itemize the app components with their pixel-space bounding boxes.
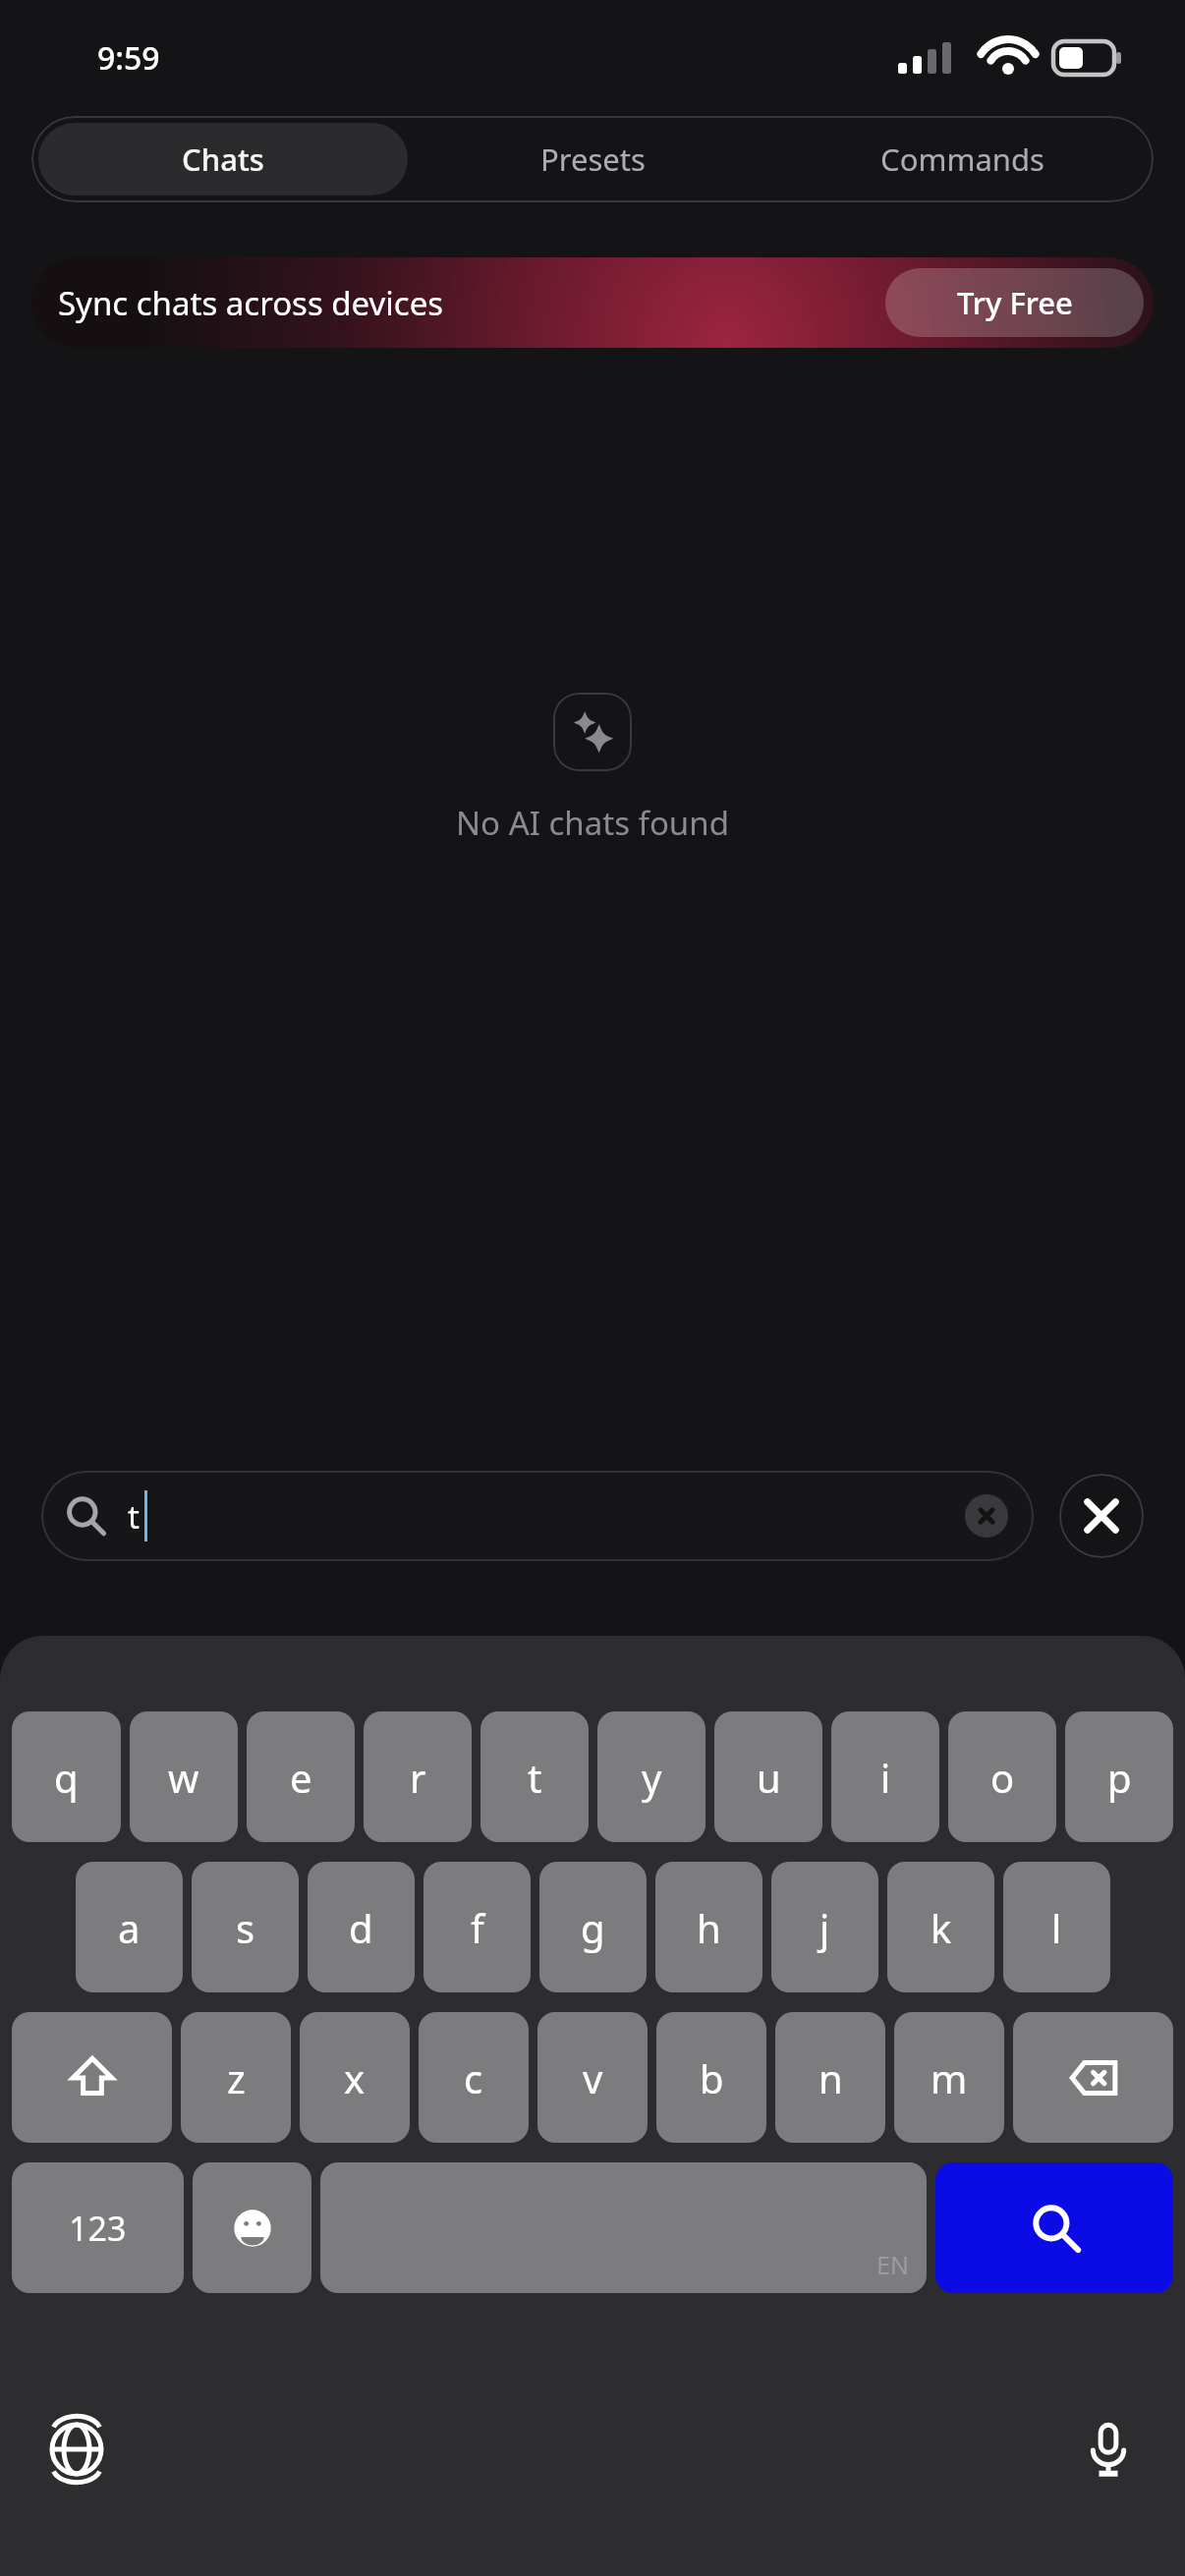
- button[interactable]: s: [192, 1862, 299, 1992]
- staticText: t: [528, 1751, 542, 1804]
- button[interactable]: x: [300, 2012, 410, 2143]
- button[interactable]: Chats: [38, 123, 408, 196]
- staticText: w: [168, 1751, 199, 1804]
- staticText: Chats: [182, 139, 264, 180]
- button[interactable]: u: [714, 1711, 822, 1842]
- button[interactable]: t: [480, 1711, 589, 1842]
- button[interactable]: p: [1065, 1711, 1173, 1842]
- staticText: u: [757, 1751, 781, 1804]
- button[interactable]: f: [423, 1862, 531, 1992]
- button[interactable]: Try Free: [885, 268, 1144, 337]
- button[interactable]: l: [1003, 1862, 1110, 1992]
- button[interactable]: Emoji: [193, 2162, 311, 2293]
- staticText: Sync chats across devices: [58, 281, 444, 325]
- button[interactable]: 123: [12, 2162, 184, 2293]
- staticText: r: [410, 1751, 426, 1804]
- staticText: p: [1107, 1751, 1132, 1804]
- staticText: EN: [876, 2248, 909, 2281]
- button[interactable]: b: [656, 2012, 766, 2143]
- staticText: s: [236, 1901, 255, 1954]
- staticText: j: [819, 1901, 830, 1954]
- button[interactable]: j: [771, 1862, 878, 1992]
- staticText: k: [931, 1901, 952, 1954]
- staticText: 123: [69, 2206, 127, 2251]
- button[interactable]: e: [247, 1711, 355, 1842]
- staticText: g: [581, 1901, 605, 1954]
- staticText: y: [642, 1751, 662, 1804]
- button[interactable]: d: [308, 1862, 415, 1992]
- button[interactable]: Voice input: [1069, 2410, 1148, 2489]
- button[interactable]: c: [419, 2012, 529, 2143]
- button[interactable]: Space: [320, 2162, 927, 2293]
- staticText: 9:59: [97, 36, 160, 80]
- button[interactable]: Shift: [12, 2012, 172, 2143]
- button[interactable]: Search: [935, 2162, 1173, 2293]
- button[interactable]: Backspace: [1013, 2012, 1173, 2143]
- button[interactable]: t: [41, 1471, 1034, 1561]
- staticText: b: [700, 2051, 724, 2104]
- staticText: Try Free: [957, 282, 1073, 323]
- button[interactable]: w: [130, 1711, 238, 1842]
- staticText: o: [990, 1751, 1015, 1804]
- staticText: c: [464, 2051, 483, 2104]
- staticText: v: [583, 2051, 603, 2104]
- staticText: h: [697, 1901, 721, 1954]
- button[interactable]: Change language: [37, 2410, 116, 2489]
- button[interactable]: i: [831, 1711, 939, 1842]
- staticText: z: [227, 2051, 246, 2104]
- staticText: n: [818, 2051, 843, 2104]
- staticText: m: [931, 2051, 968, 2104]
- staticText: e: [290, 1751, 312, 1804]
- staticText: Presets: [540, 139, 646, 180]
- staticText: f: [471, 1901, 484, 1954]
- staticText: q: [54, 1751, 79, 1804]
- staticText: i: [880, 1751, 891, 1804]
- button[interactable]: Presets: [408, 123, 777, 196]
- button[interactable]: v: [537, 2012, 648, 2143]
- button[interactable]: m: [894, 2012, 1004, 2143]
- button[interactable]: Commands: [777, 123, 1147, 196]
- button[interactable]: Sync chats across devices: [31, 257, 1154, 348]
- staticText: a: [118, 1901, 141, 1954]
- staticText: l: [1051, 1901, 1062, 1954]
- button[interactable]: r: [364, 1711, 472, 1842]
- button[interactable]: z: [181, 2012, 291, 2143]
- button[interactable]: h: [655, 1862, 762, 1992]
- button[interactable]: n: [775, 2012, 885, 2143]
- button[interactable]: a: [76, 1862, 183, 1992]
- staticText: Commands: [880, 139, 1044, 180]
- button[interactable]: q: [12, 1711, 121, 1842]
- button[interactable]: o: [948, 1711, 1056, 1842]
- button[interactable]: Close search: [1059, 1474, 1144, 1558]
- staticText: t: [128, 1494, 140, 1539]
- button[interactable]: y: [597, 1711, 705, 1842]
- button[interactable]: k: [887, 1862, 994, 1992]
- button[interactable]: g: [539, 1862, 647, 1992]
- staticText: No AI chats found: [456, 801, 729, 845]
- staticText: d: [349, 1901, 373, 1954]
- button[interactable]: Clear text: [965, 1494, 1008, 1538]
- staticText: x: [344, 2051, 366, 2104]
